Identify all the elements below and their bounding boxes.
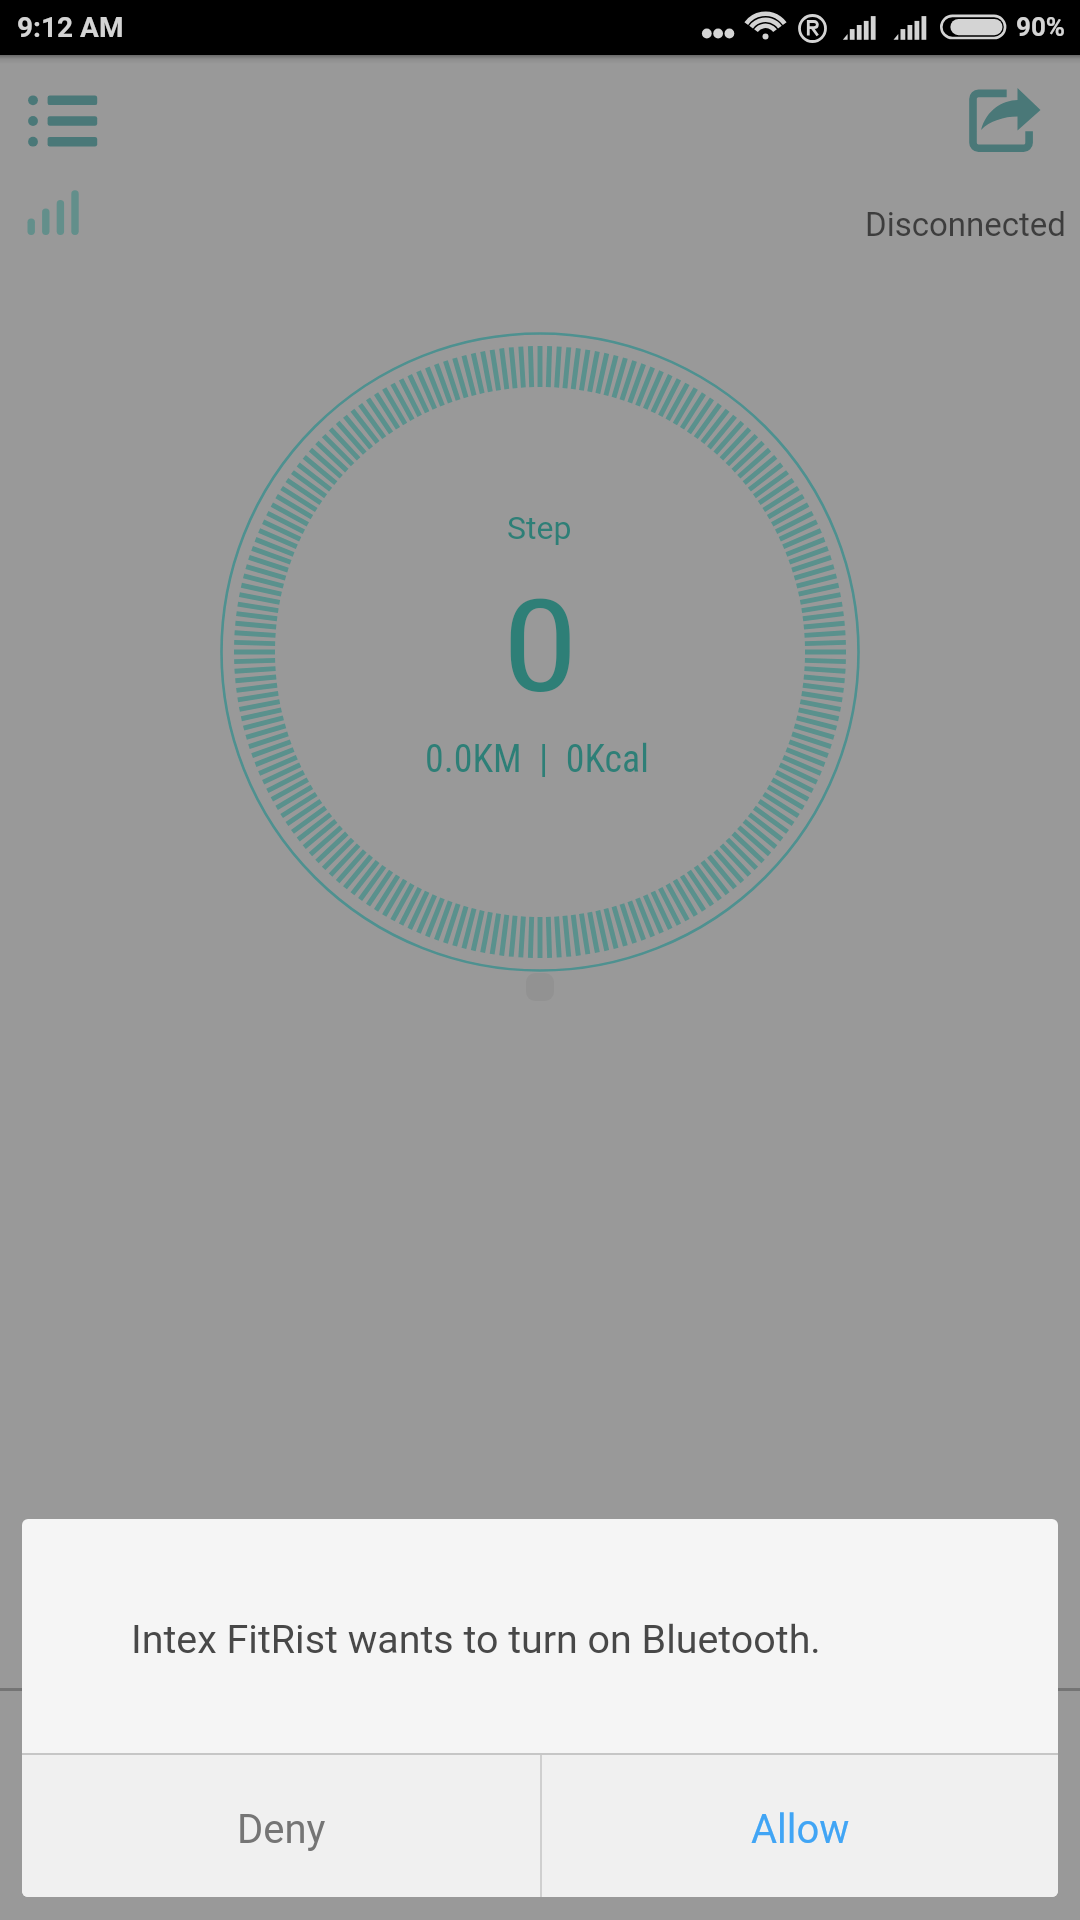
button[interactable]: Deny [22,1755,540,1897]
staticText: 9:12 AM [17,11,124,44]
staticText: 0 [502,572,579,722]
staticText: 0.0KM | 0Kcal [425,737,649,781]
button[interactable]: History list [10,80,120,164]
staticText: Disconnected [865,205,1066,244]
button[interactable]: Signal strength [20,185,96,241]
staticText: Intex FitRist wants to turn on Bluetooth… [131,1616,821,1662]
staticText: Deny [237,1806,326,1853]
staticText: Allow [751,1806,850,1853]
button[interactable]: Share [960,82,1056,162]
button[interactable]: Allow [542,1755,1058,1897]
button[interactable]: Step counter [190,302,890,1002]
staticText: 90% [1016,12,1066,42]
button[interactable]: Disconnected [840,185,1060,247]
staticText: Step [507,509,572,547]
